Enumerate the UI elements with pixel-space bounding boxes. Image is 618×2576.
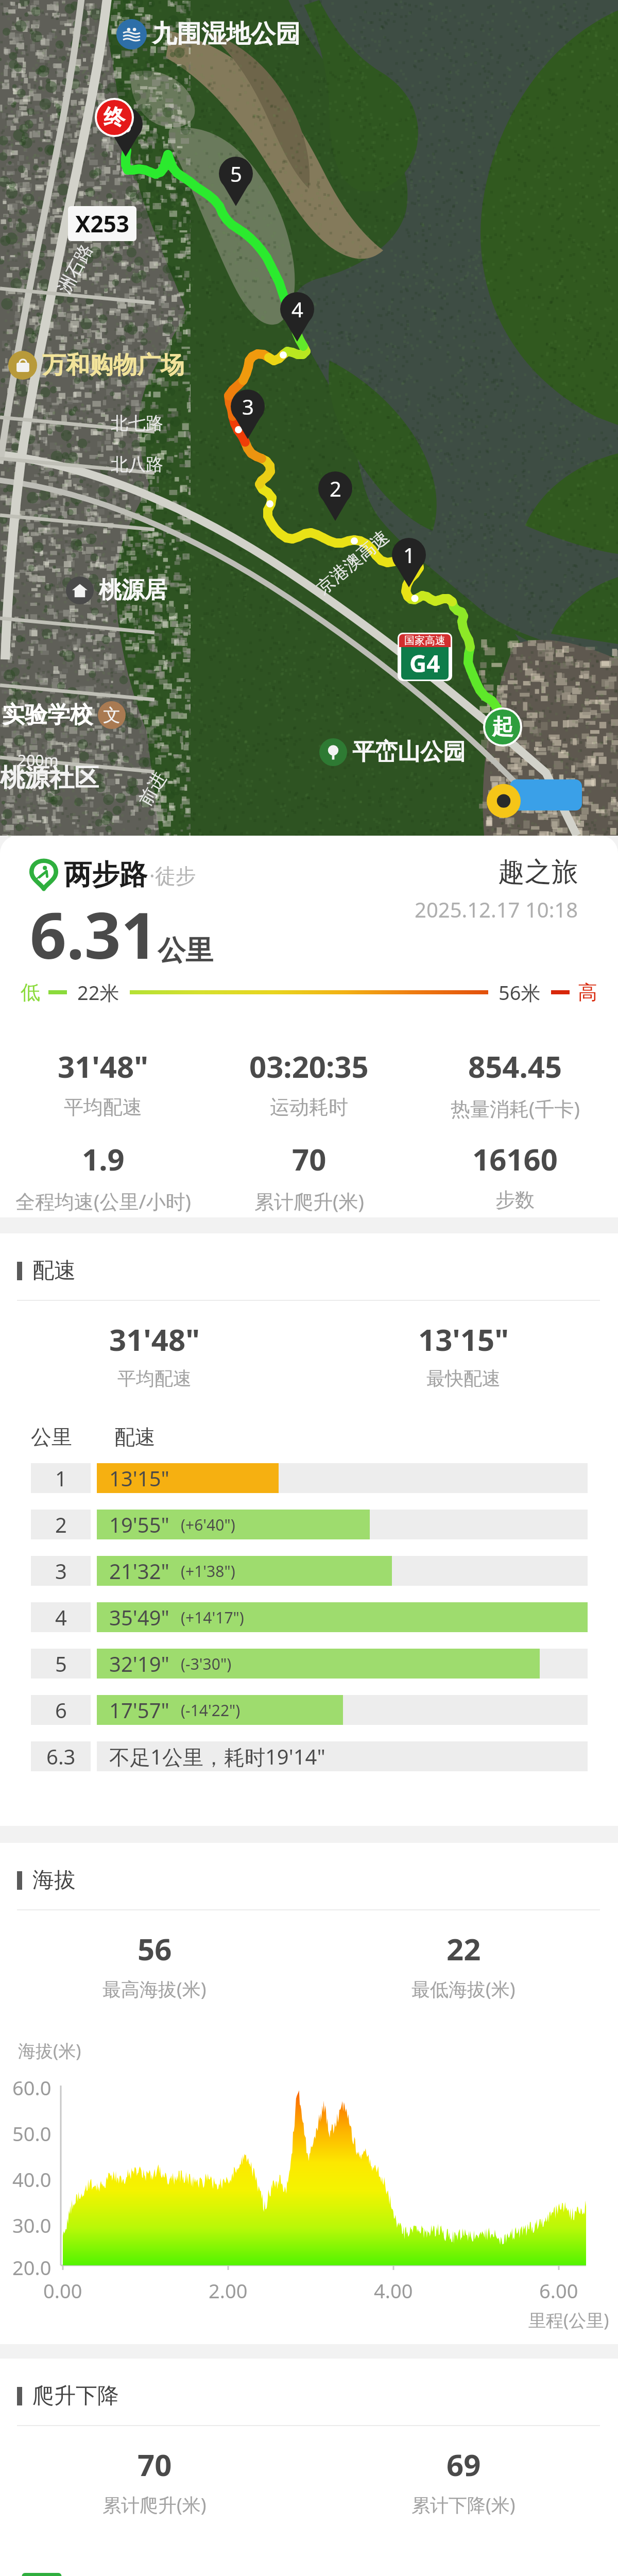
staticText: 31'48" xyxy=(58,1046,148,1087)
staticText: 文 xyxy=(103,704,121,726)
staticText: 32'19" xyxy=(109,1650,169,1677)
staticText: 桃源社区 xyxy=(0,762,99,793)
staticText: 高 xyxy=(578,980,597,1005)
staticText: 4 xyxy=(55,1603,67,1631)
staticText: 854.45 xyxy=(468,1046,562,1087)
staticText: 最高海拔(米) xyxy=(102,1976,207,2002)
staticText: 2 xyxy=(330,474,341,502)
staticText: 配速 xyxy=(32,1257,76,1284)
staticText: 爬升下降 xyxy=(32,2382,119,2410)
staticText: 3 xyxy=(242,393,254,420)
staticText: (-3'30") xyxy=(181,1653,232,1674)
staticText: 京港澳高速 xyxy=(312,526,393,599)
staticText: 1 xyxy=(403,541,415,569)
staticText: 69 xyxy=(447,2444,481,2485)
staticText: 步数 xyxy=(495,1188,535,1212)
staticText: 2 xyxy=(55,1511,67,1538)
staticText: ·徒步 xyxy=(149,861,196,889)
staticText: 1 xyxy=(55,1464,67,1492)
staticText: 2025.12.17 10:18 xyxy=(415,895,578,923)
staticText: 56 xyxy=(138,1928,172,1969)
staticText: (+14'17") xyxy=(181,1607,244,1628)
staticText: 60.0 xyxy=(12,2074,51,2101)
staticText: 50.0 xyxy=(12,2120,51,2147)
staticText: 累计爬升(米) xyxy=(254,1188,364,1214)
staticText: 低 xyxy=(21,980,40,1005)
staticText: 56米 xyxy=(499,979,541,1006)
staticText: 里程(公里) xyxy=(528,2308,609,2332)
staticText: 前进 xyxy=(134,768,171,810)
staticText: 70 xyxy=(138,2444,172,2485)
staticText: 5 xyxy=(55,1650,67,1677)
staticText: 30.0 xyxy=(12,2212,51,2239)
staticText: 2.00 xyxy=(209,2277,248,2304)
staticText: 桃源居 xyxy=(99,576,167,604)
staticText: X253 xyxy=(75,208,129,239)
staticText: 平均配速 xyxy=(64,1095,142,1120)
staticText: 公里 xyxy=(31,1424,72,1450)
staticText: (-14'22") xyxy=(181,1700,241,1721)
staticText: 6.3 xyxy=(46,1742,76,1770)
staticText: 平峦山公园 xyxy=(352,738,466,766)
staticText: 0.00 xyxy=(43,2277,82,2304)
staticText: 70 xyxy=(292,1139,327,1179)
staticText: 200m xyxy=(18,750,59,771)
staticText: 35'49" xyxy=(109,1603,169,1631)
staticText: 22米 xyxy=(77,979,119,1006)
staticText: 3 xyxy=(55,1557,67,1585)
staticText: 16160 xyxy=(472,1139,558,1179)
staticText: 运动耗时 xyxy=(270,1095,348,1120)
staticText: 累计爬升(米) xyxy=(102,2492,207,2517)
staticText: 6 xyxy=(120,110,132,138)
staticText: 17'57" xyxy=(109,1696,169,1724)
staticText: 5 xyxy=(230,160,242,188)
staticText: 海拔(米) xyxy=(18,2039,81,2062)
staticText: (+6'40") xyxy=(181,1514,235,1535)
staticText: 21'32" xyxy=(109,1557,169,1585)
staticText: 31'48" xyxy=(109,1319,200,1360)
staticText: 海拔 xyxy=(32,1867,76,1894)
staticText: 平均配速 xyxy=(117,1367,192,1390)
staticText: 1.9 xyxy=(82,1139,125,1179)
staticText: 不足1公里，耗时19'14" xyxy=(109,1742,325,1771)
staticText: G4 xyxy=(409,647,440,680)
staticText: 最低海拔(米) xyxy=(411,1976,516,2002)
staticText: 19'55" xyxy=(109,1511,169,1538)
staticText: 趣之旅 xyxy=(498,855,578,889)
staticText: 6.00 xyxy=(539,2277,578,2304)
staticText: 最快配速 xyxy=(426,1367,501,1390)
staticText: 热量消耗(千卡) xyxy=(451,1095,580,1122)
staticText: 6 xyxy=(55,1696,67,1724)
staticText: 公里 xyxy=(158,933,213,968)
staticText: 北七路 xyxy=(111,412,163,434)
staticText: 配速 xyxy=(114,1424,156,1450)
staticText: 6.31 xyxy=(30,890,158,977)
staticText: (+1'38") xyxy=(181,1561,235,1582)
staticText: 累计下降(米) xyxy=(411,2492,516,2517)
staticText: 国家高速 xyxy=(404,634,445,647)
staticText: 13'15" xyxy=(418,1319,509,1360)
staticText: 13'15" xyxy=(109,1464,169,1492)
staticText: 4 xyxy=(291,295,303,323)
staticText: 4.00 xyxy=(374,2277,413,2304)
staticText: 全程均速(公里/小时) xyxy=(15,1188,191,1214)
staticText: 终 xyxy=(104,104,125,131)
staticText: 洲石路 xyxy=(53,240,97,297)
staticText: 实验学校 xyxy=(2,701,93,729)
staticText: 万和购物广场 xyxy=(42,350,184,380)
staticText: 北八路 xyxy=(111,453,163,476)
staticText: 22 xyxy=(447,1928,481,1969)
staticText: 九围湿地公园 xyxy=(152,19,300,49)
staticText: 两步路 xyxy=(64,857,147,892)
staticText: 40.0 xyxy=(12,2166,51,2193)
staticText: 起 xyxy=(492,714,513,741)
staticText: 03:20:35 xyxy=(249,1046,369,1087)
staticText: 20.0 xyxy=(12,2254,51,2281)
